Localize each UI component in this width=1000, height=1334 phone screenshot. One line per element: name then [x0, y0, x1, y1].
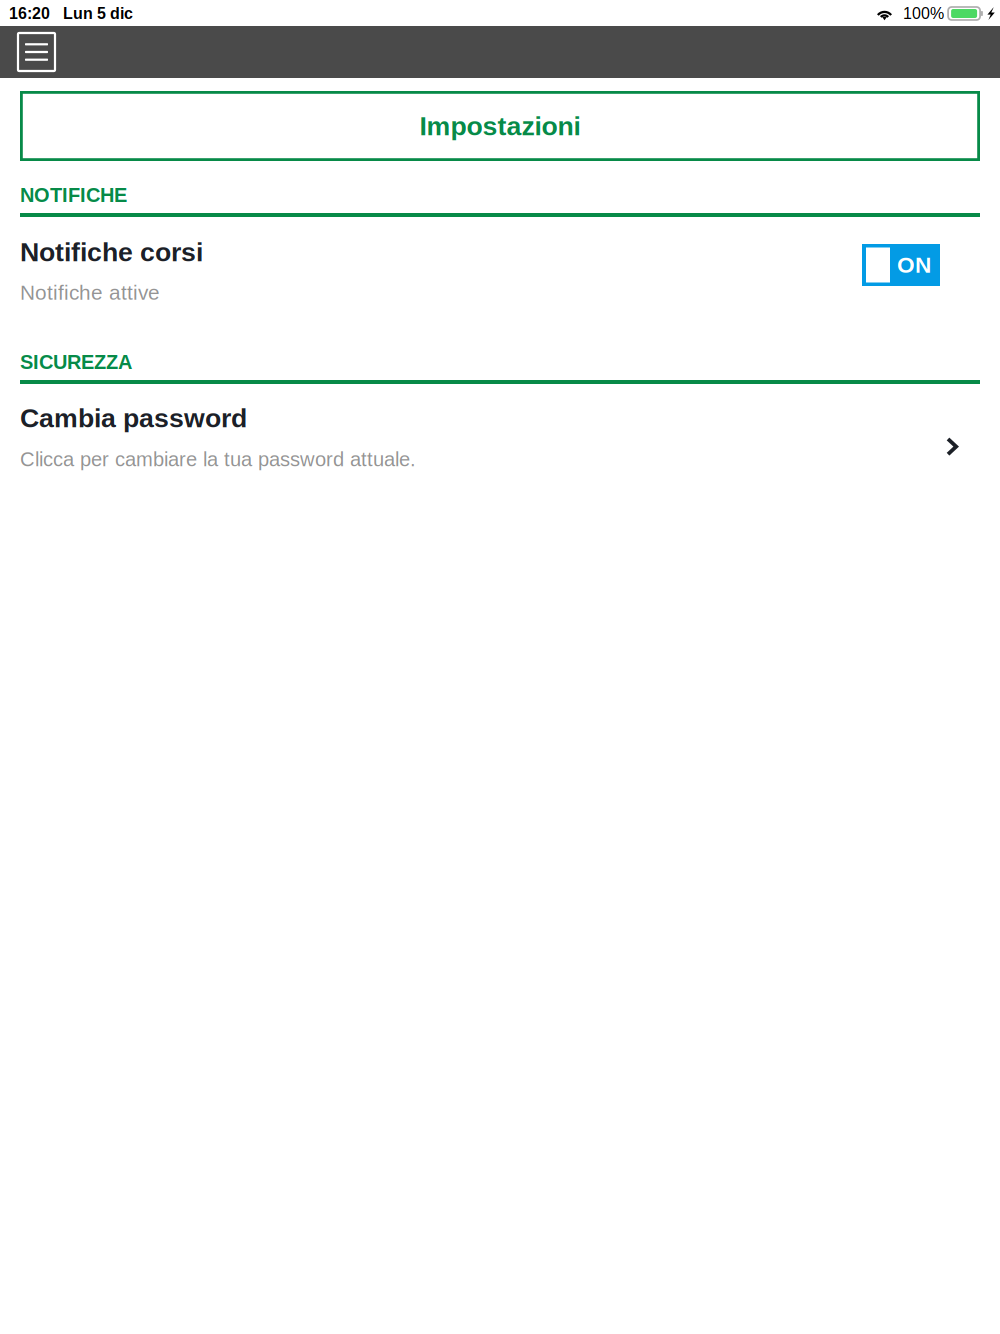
staticText: 100%	[903, 5, 944, 22]
staticText: ON	[897, 252, 931, 278]
button[interactable]: Cambia password	[0, 0, 979, 481]
staticText: SICUREZZA	[20, 351, 132, 373]
button[interactable]: Menu	[0, 26, 64, 78]
button[interactable]: Impostazioni	[0, 0, 980, 161]
staticText: Notifiche attive	[20, 281, 160, 304]
staticText: Notifiche corsi	[20, 237, 203, 267]
staticText: NOTIFICHE	[20, 184, 127, 206]
staticText: Lun 5 dic	[63, 5, 133, 22]
staticText: Cambia password	[20, 403, 247, 433]
staticText: Clicca per cambiare la tua password attu…	[20, 448, 416, 470]
staticText: 16:20	[9, 5, 50, 22]
button[interactable]: Notifiche corsi, attive	[0, 0, 979, 305]
staticText: Impostazioni	[419, 111, 580, 141]
